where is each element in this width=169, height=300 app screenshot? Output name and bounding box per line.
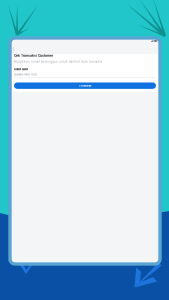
staticText: Nomor Meter — [14, 68, 28, 71]
button[interactable]: Back — [10, 44, 160, 54]
button[interactable]: Selanjutnya — [14, 82, 156, 89]
staticText: Cek Transaksi Customer — [14, 53, 53, 57]
staticText: Selanjutnya — [79, 84, 91, 87]
staticText: Masukkan nomor meter — [14, 73, 37, 76]
staticText: Masukkan nomor pelanggan untuk melihat d… — [14, 60, 102, 63]
